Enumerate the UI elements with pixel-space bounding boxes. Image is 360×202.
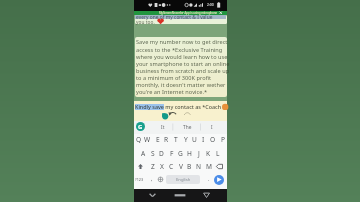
button[interactable]: F [167, 147, 176, 160]
button[interactable]: V [176, 160, 185, 173]
staticText: G [138, 123, 143, 131]
button[interactable]: W [143, 133, 152, 146]
staticText: Y [184, 135, 188, 144]
button[interactable]: I [204, 121, 220, 133]
staticText: . [208, 175, 210, 182]
staticText: K [206, 149, 211, 158]
button[interactable]: X [157, 160, 166, 173]
button[interactable]: U [190, 133, 199, 146]
staticText: S [151, 149, 155, 158]
staticText: MyScreenRecorder App is using microphone [159, 11, 218, 15]
staticText: J [198, 149, 200, 158]
staticText: G [178, 149, 183, 158]
staticText: H [187, 149, 192, 158]
button[interactable]: The [179, 121, 195, 133]
button[interactable]: T [171, 133, 180, 146]
button[interactable]: M [204, 160, 213, 173]
button[interactable] [135, 15, 227, 24]
button[interactable]: E [153, 133, 162, 146]
button[interactable]: B [185, 160, 194, 173]
button[interactable] [134, 11, 227, 16]
button[interactable]: D [157, 147, 166, 160]
button[interactable]: J [194, 147, 203, 160]
staticText: It [161, 124, 165, 131]
button[interactable]: . [204, 172, 213, 185]
staticText: A [141, 149, 146, 158]
staticText: I [211, 124, 213, 131]
button[interactable] [134, 101, 227, 121]
button[interactable] [146, 190, 159, 201]
staticText: Z [151, 162, 155, 171]
staticText: N [196, 162, 202, 171]
staticText: F [170, 149, 174, 158]
staticText: R [164, 135, 169, 144]
staticText: U [192, 135, 197, 144]
staticText: Q [136, 135, 142, 144]
button[interactable]: K [204, 147, 213, 160]
staticText: 2:00 [207, 2, 214, 6]
button[interactable]: L [213, 147, 222, 160]
staticText: every one of my contact & I value [136, 14, 213, 21]
button[interactable]: ?123 [134, 173, 145, 186]
button[interactable]: , [147, 172, 156, 185]
button[interactable] [156, 173, 165, 186]
button[interactable]: I [199, 133, 208, 146]
button[interactable]: H [185, 147, 194, 160]
button[interactable] [174, 190, 187, 201]
staticText: P [221, 135, 225, 144]
staticText: X [160, 162, 164, 171]
button[interactable] [135, 37, 227, 97]
button[interactable]: It [155, 121, 171, 133]
staticText: you too. [136, 19, 155, 26]
button[interactable]: Q [134, 133, 143, 146]
staticText: Save my number now to get direct access … [136, 38, 230, 95]
staticText: English [176, 177, 191, 183]
button[interactable]: S [148, 147, 157, 160]
button[interactable]: G [176, 147, 185, 160]
staticText: W [144, 135, 151, 144]
staticText: The [183, 124, 192, 131]
button[interactable]: R [162, 133, 171, 146]
button[interactable]: English [166, 175, 200, 184]
staticText: B [187, 162, 192, 171]
button[interactable]: C [167, 160, 176, 173]
staticText: D [159, 149, 164, 158]
button[interactable]: Y [181, 133, 190, 146]
button[interactable]: P [218, 133, 227, 146]
staticText: ?123 [135, 177, 144, 182]
staticText: O [210, 135, 216, 144]
staticText: E [156, 135, 160, 144]
staticText: V [179, 162, 183, 171]
staticText: I [202, 135, 205, 144]
button[interactable] [214, 175, 224, 185]
staticText: M [206, 162, 212, 171]
button[interactable]: O [208, 133, 217, 146]
staticText: Kindly save my contact as *Coach [135, 103, 222, 110]
staticText: , [151, 175, 153, 182]
button[interactable]: Z [148, 160, 157, 173]
button[interactable]: G [136, 122, 145, 131]
button[interactable]: A [139, 147, 148, 160]
staticText: C [169, 162, 174, 171]
button[interactable] [200, 190, 213, 201]
staticText: T [174, 135, 178, 144]
button[interactable]: N [194, 160, 203, 173]
staticText: L [216, 149, 220, 158]
